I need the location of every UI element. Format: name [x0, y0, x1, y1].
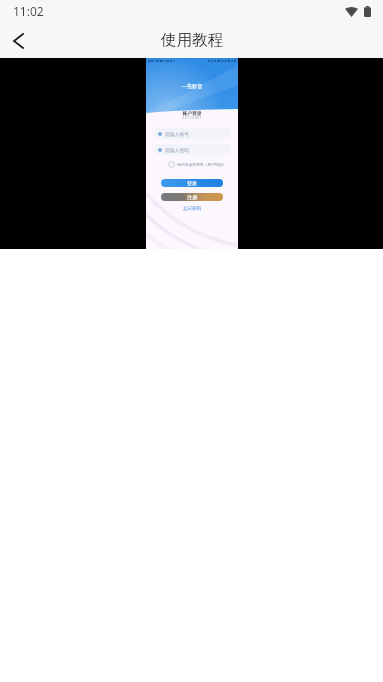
staticText: 11:02: [13, 3, 44, 19]
button[interactable]: 请输入账号: [154, 128, 231, 139]
button[interactable]: 登录: [161, 179, 223, 187]
staticText: 一亮影音: [146, 83, 238, 90]
staticText: ACCOUNT: [146, 115, 238, 120]
button[interactable]: Back: [1, 24, 35, 58]
staticText: 登录: [187, 180, 197, 186]
button[interactable]: 请输入密码: [154, 144, 231, 155]
staticText: 注册: [187, 194, 197, 200]
staticText: 账户登录: [146, 110, 238, 116]
button[interactable]: 忘记密码: [146, 206, 238, 212]
staticText: 请输入密码: [165, 147, 189, 153]
staticText: 使用教程: [161, 30, 223, 50]
button[interactable]: 注册: [161, 193, 223, 201]
staticText: 请输入账号: [165, 131, 189, 137]
staticText: 我已阅读并同意《用户协议》: [177, 162, 227, 167]
